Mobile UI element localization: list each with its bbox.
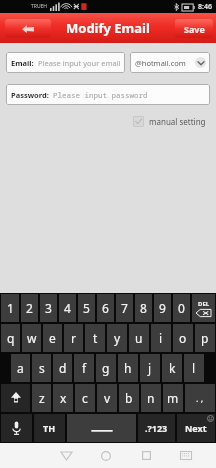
button[interactable]: g bbox=[96, 354, 116, 382]
staticText: Password: bbox=[11, 90, 49, 100]
staticText: u bbox=[135, 330, 143, 346]
button[interactable]: w bbox=[22, 324, 41, 352]
button[interactable]: Voice input bbox=[1, 414, 32, 442]
staticText: 6 bbox=[102, 300, 109, 316]
button[interactable]: Save bbox=[175, 19, 213, 38]
staticText: s bbox=[39, 360, 45, 376]
staticText: l bbox=[192, 360, 196, 376]
button[interactable]: Delete bbox=[192, 294, 215, 322]
staticText: 2 bbox=[26, 300, 33, 316]
button[interactable]: m bbox=[163, 384, 183, 412]
button[interactable]: 7 bbox=[116, 294, 133, 322]
button[interactable]: Back bbox=[5, 19, 51, 38]
button[interactable]: l bbox=[184, 354, 204, 382]
button[interactable]: Recent apps bbox=[126, 443, 166, 468]
button[interactable]: 9 bbox=[154, 294, 171, 322]
button[interactable]: Next bbox=[177, 414, 215, 442]
button[interactable]: @hotmail.com bbox=[130, 52, 210, 73]
staticText: TH bbox=[43, 422, 56, 434]
button[interactable]: 8 bbox=[135, 294, 152, 322]
staticText: Please input your email bbox=[38, 58, 121, 68]
staticText: . , bbox=[196, 392, 204, 404]
staticText: 8:46 bbox=[198, 2, 212, 12]
staticText: c bbox=[82, 390, 88, 406]
staticText: Modify Email bbox=[66, 19, 150, 37]
button[interactable]: 0 bbox=[173, 294, 190, 322]
staticText: 0 bbox=[178, 300, 185, 316]
button[interactable]: manual setting bbox=[131, 114, 208, 129]
button[interactable]: j bbox=[140, 354, 160, 382]
staticText: 5 bbox=[83, 300, 90, 316]
button[interactable]: h bbox=[118, 354, 138, 382]
staticText: d bbox=[59, 360, 67, 376]
staticText: b bbox=[125, 390, 133, 406]
button[interactable]: a bbox=[11, 354, 30, 382]
staticText: manual setting bbox=[149, 116, 206, 127]
button[interactable]: i bbox=[151, 324, 171, 352]
button[interactable]: TH bbox=[34, 414, 65, 442]
staticText: z bbox=[39, 390, 45, 406]
staticText: @hotmail.com bbox=[135, 58, 186, 68]
staticText: TRUEH bbox=[31, 3, 48, 10]
button[interactable]: Choose domain bbox=[195, 57, 206, 68]
button[interactable]: 4 bbox=[59, 294, 76, 322]
button[interactable]: b bbox=[119, 384, 139, 412]
button[interactable]: o bbox=[173, 324, 193, 352]
staticText: y bbox=[114, 330, 121, 346]
button[interactable]: r bbox=[64, 324, 83, 352]
button[interactable]: 1 bbox=[1, 294, 19, 322]
button[interactable]: u bbox=[129, 324, 149, 352]
button[interactable]: 6 bbox=[97, 294, 114, 322]
button[interactable]: 5 bbox=[78, 294, 95, 322]
button[interactable]: y bbox=[107, 324, 127, 352]
staticText: k bbox=[169, 360, 176, 376]
staticText: h bbox=[124, 360, 132, 376]
staticText: Save bbox=[184, 23, 205, 35]
button[interactable]: p bbox=[195, 324, 215, 352]
staticText: m bbox=[167, 390, 179, 406]
staticText: a bbox=[17, 360, 24, 376]
staticText: i bbox=[159, 330, 163, 346]
staticText: t bbox=[93, 330, 98, 346]
button[interactable]: n bbox=[141, 384, 161, 412]
staticText: w bbox=[27, 330, 37, 346]
staticText: p bbox=[201, 330, 209, 346]
button[interactable]: Email: bbox=[6, 52, 125, 73]
button[interactable]: Shift bbox=[1, 384, 30, 412]
button[interactable]: Hide keyboard bbox=[166, 443, 206, 468]
staticText: f bbox=[82, 360, 87, 376]
staticText: 7 bbox=[121, 300, 128, 316]
staticText: g bbox=[102, 360, 110, 376]
staticText: n bbox=[147, 390, 155, 406]
staticText: 9 bbox=[159, 300, 166, 316]
button[interactable]: t bbox=[85, 324, 105, 352]
button[interactable]: Back bbox=[46, 443, 86, 468]
button[interactable]: .?123 bbox=[138, 414, 175, 442]
button[interactable]: . , bbox=[185, 384, 215, 412]
staticText: e bbox=[49, 330, 56, 346]
button[interactable]: k bbox=[162, 354, 182, 382]
button[interactable]: e bbox=[43, 324, 62, 352]
button[interactable]: Password: bbox=[6, 84, 210, 105]
button[interactable]: Home bbox=[86, 443, 126, 468]
button[interactable]: Space bbox=[67, 414, 136, 442]
button[interactable]: 2 bbox=[21, 294, 38, 322]
staticText: .?123 bbox=[145, 422, 168, 434]
button[interactable]: q bbox=[1, 324, 20, 352]
staticText: 1 bbox=[7, 300, 14, 316]
staticText: 3 bbox=[45, 300, 52, 316]
button[interactable]: z bbox=[32, 384, 51, 412]
button[interactable]: c bbox=[75, 384, 95, 412]
button[interactable]: v bbox=[97, 384, 117, 412]
staticText: v bbox=[104, 390, 111, 406]
staticText: DEL bbox=[198, 300, 210, 308]
staticText: Please input password bbox=[53, 90, 148, 100]
staticText: j bbox=[148, 360, 152, 376]
button[interactable]: f bbox=[74, 354, 94, 382]
button[interactable]: s bbox=[32, 354, 51, 382]
button[interactable]: 3 bbox=[40, 294, 57, 322]
staticText: 4 bbox=[64, 300, 71, 316]
staticText: 8 bbox=[140, 300, 147, 316]
button[interactable]: d bbox=[53, 354, 72, 382]
button[interactable]: x bbox=[53, 384, 73, 412]
